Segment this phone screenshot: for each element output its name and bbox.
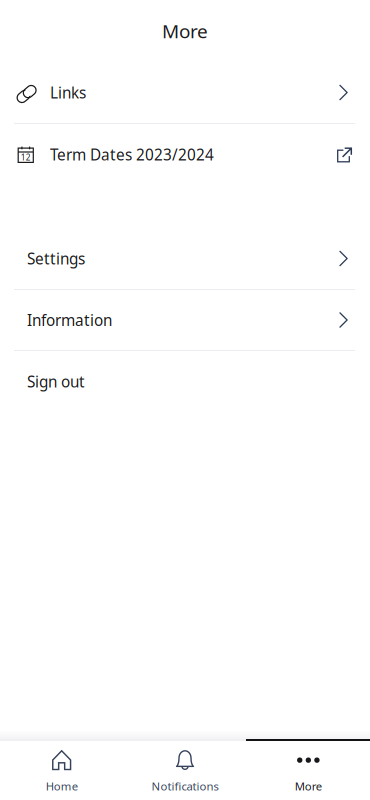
button[interactable]: More <box>247 741 370 800</box>
button[interactable]: Settings <box>0 228 370 289</box>
button[interactable]: Sign out <box>0 351 370 412</box>
staticText: More <box>295 778 322 794</box>
staticText: Home <box>46 778 78 794</box>
staticText: 12 <box>21 152 31 163</box>
button[interactable]: 12 <box>0 124 370 185</box>
staticText: Term Dates 2023/2024 <box>50 144 214 165</box>
staticText: Settings <box>27 248 85 269</box>
staticText: Notifications <box>151 778 218 794</box>
button[interactable]: Home <box>0 741 123 800</box>
staticText: More <box>162 18 208 44</box>
staticText: Sign out <box>27 371 85 392</box>
button[interactable]: Information <box>0 290 370 350</box>
staticText: Links <box>50 82 86 103</box>
button[interactable]: Links <box>0 62 370 123</box>
staticText: Information <box>27 310 112 330</box>
button[interactable]: Notifications <box>123 741 247 800</box>
